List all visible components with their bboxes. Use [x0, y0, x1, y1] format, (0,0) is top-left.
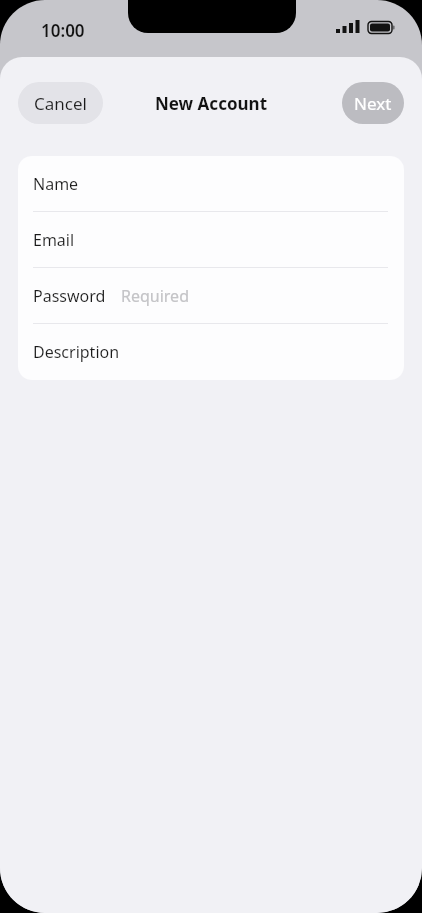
- staticText: Cancel: [34, 92, 87, 115]
- button[interactable]: Next: [342, 82, 404, 124]
- button[interactable]: Password: [18, 268, 404, 324]
- button[interactable]: Email: [18, 212, 404, 268]
- staticText: Email: [33, 229, 75, 251]
- staticText: Password: [33, 285, 106, 307]
- staticText: 10:00: [41, 19, 85, 42]
- staticText: Name: [33, 173, 79, 195]
- staticText: Next: [354, 92, 392, 115]
- staticText: Description: [33, 341, 120, 363]
- button[interactable]: Name: [18, 156, 404, 212]
- button[interactable]: Description: [18, 324, 404, 380]
- staticText: New Account: [0, 92, 422, 115]
- button[interactable]: Cancel: [18, 82, 103, 124]
- staticText: Required: [121, 285, 189, 307]
